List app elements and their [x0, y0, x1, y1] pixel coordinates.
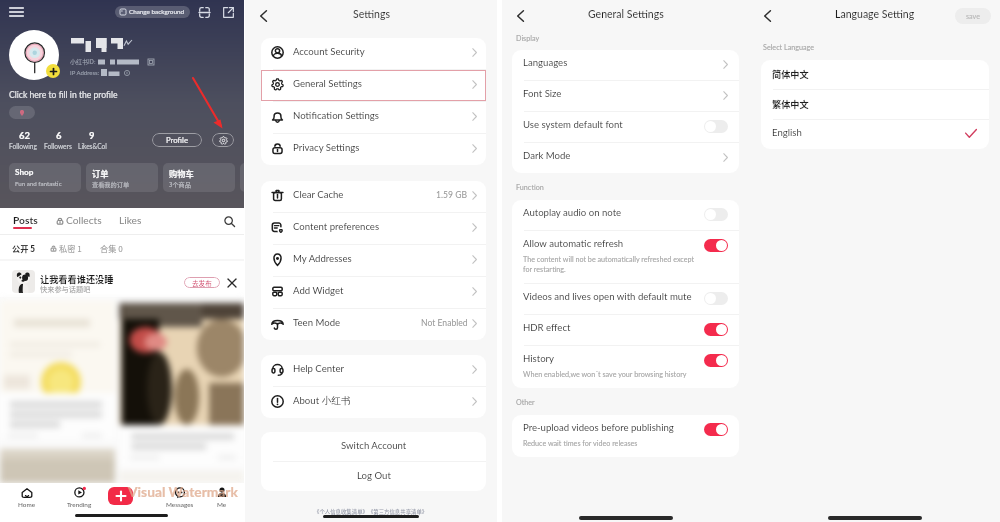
button[interactable]: 公开 5	[12, 242, 36, 254]
button[interactable]: 繁体中文	[761, 90, 989, 119]
button[interactable]: History	[512, 346, 739, 388]
staticText: Followers	[44, 142, 72, 150]
staticText: General Settings	[588, 8, 664, 21]
button[interactable]: Location	[9, 106, 35, 119]
staticText: Pre-upload videos before publishing	[523, 422, 674, 434]
button[interactable]: Close banner	[225, 276, 238, 289]
staticText: 让我看看谁还没睡	[40, 272, 114, 285]
button[interactable]: General Settings	[261, 70, 486, 101]
button[interactable]: Toggle	[704, 323, 728, 336]
staticText: Videos and lives open with default mute	[523, 291, 692, 303]
staticText: 查看我的订单	[92, 180, 130, 189]
staticText: Language Setting	[835, 8, 915, 21]
button[interactable]: Back	[510, 6, 530, 26]
button[interactable]: Toggle	[704, 292, 728, 305]
staticText: Settings	[353, 8, 390, 21]
button[interactable]: Content preferences	[261, 213, 486, 244]
button[interactable]: Settings	[212, 133, 234, 147]
button[interactable]: Share	[221, 5, 236, 20]
staticText: Autoplay audio on note	[523, 207, 622, 219]
staticText: Fun and fantastic	[15, 180, 62, 187]
button[interactable]: 62	[9, 130, 39, 152]
button[interactable]: 购物车	[163, 163, 235, 192]
button[interactable]: Toggle	[704, 239, 728, 252]
button[interactable]: HDR effect	[512, 315, 739, 345]
button[interactable]	[240, 163, 253, 192]
button[interactable]: Posts	[9, 208, 37, 234]
button[interactable]: 合集 0	[100, 242, 123, 254]
button[interactable]: Shop	[9, 163, 81, 192]
button[interactable]: English	[761, 120, 989, 149]
button[interactable]: Collects	[56, 214, 102, 226]
staticText: Languages	[523, 57, 568, 69]
staticText: 62	[19, 130, 31, 141]
button[interactable]: Teen Mode	[261, 309, 486, 340]
button[interactable]: Use system default font	[512, 112, 739, 142]
button[interactable]: Click here to fill in the profile	[9, 90, 118, 100]
staticText: When enabled,we won´t save your browsing…	[523, 370, 687, 379]
staticText: Display	[516, 34, 540, 43]
button[interactable]: Privacy Settings	[261, 134, 486, 165]
button[interactable]: 6	[44, 130, 74, 152]
button[interactable]: Switch Account	[261, 432, 486, 461]
staticText: 繁体中文	[772, 97, 809, 110]
staticText: 去发布	[192, 278, 212, 288]
button[interactable]: Toggle	[704, 208, 728, 221]
button[interactable]: 订单	[86, 163, 158, 192]
staticText: Profile	[166, 135, 189, 144]
button[interactable]: 9	[78, 130, 108, 152]
staticText: Privacy Settings	[293, 142, 360, 154]
staticText: 简体中文	[772, 67, 809, 80]
button[interactable]: Pre-upload videos before publishing	[512, 415, 739, 457]
button[interactable]: save	[955, 8, 991, 24]
staticText: Use system default font	[523, 119, 623, 131]
button[interactable]: My Addresses	[261, 245, 486, 276]
button[interactable]: 去发布	[184, 277, 220, 288]
button[interactable]: Search	[221, 213, 237, 229]
button[interactable]: Change background	[115, 6, 190, 18]
button[interactable]: About 小红书	[261, 387, 486, 418]
button[interactable]: Home	[18, 487, 36, 509]
button[interactable]: Add story	[46, 64, 60, 78]
button[interactable]: 私密 1	[50, 242, 82, 254]
button[interactable]: Likes	[119, 214, 142, 226]
button[interactable]: Me	[216, 487, 228, 509]
button[interactable]: Dark Mode	[512, 143, 739, 173]
button[interactable]: Allow automatic refresh	[512, 231, 739, 283]
button[interactable]: Toggle	[704, 423, 728, 436]
button[interactable]: Messages	[166, 487, 194, 509]
button[interactable]: Create post	[108, 487, 133, 505]
staticText: Account Security	[293, 46, 365, 58]
staticText: save	[966, 12, 981, 21]
button[interactable]: Back	[757, 6, 777, 26]
button[interactable]: Scan code	[197, 5, 212, 20]
button[interactable]: Videos and lives open with default mute	[512, 284, 739, 314]
staticText: 9	[89, 130, 95, 141]
button[interactable]: Languages	[512, 50, 739, 80]
button[interactable]: Trending	[67, 487, 92, 509]
button[interactable]: Toggle	[704, 354, 728, 367]
staticText: 3个商品	[169, 180, 191, 189]
button[interactable]: Font Size	[512, 81, 739, 111]
button[interactable]: Menu	[6, 4, 26, 20]
staticText: General Settings	[293, 78, 362, 90]
button[interactable]: Toggle	[704, 120, 728, 133]
staticText: 《个人信息收集清单》《第三方信息共享清单》	[314, 508, 428, 516]
button[interactable]: 让我看看谁还没睡	[0, 261, 244, 297]
staticText: 小红书ID:	[70, 57, 96, 66]
staticText: Function	[516, 183, 544, 192]
button[interactable]: Log Out	[261, 462, 486, 491]
button[interactable]: Profile	[152, 133, 202, 147]
button[interactable]: 简体中文	[761, 60, 989, 89]
button[interactable]: Help Center	[261, 355, 486, 386]
staticText: Not Enabled	[421, 318, 468, 328]
button[interactable]: Notification Settings	[261, 102, 486, 133]
button[interactable]: Clear Cache	[261, 181, 486, 212]
button[interactable]: Account Security	[261, 38, 486, 69]
button[interactable]: Back	[253, 6, 273, 26]
button[interactable]: Add Widget	[261, 277, 486, 308]
button[interactable]: Profile photo	[9, 30, 59, 80]
button[interactable]: Autoplay audio on note	[512, 200, 739, 230]
staticText: 订单	[92, 167, 109, 179]
staticText: IP Address:	[70, 69, 100, 76]
